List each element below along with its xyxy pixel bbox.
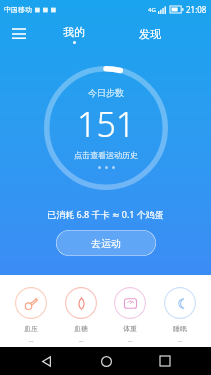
- staticText: --: [128, 336, 133, 345]
- staticText: 点击查看运动历史: [74, 150, 138, 160]
- staticText: 已消耗 6.8 千卡 ≈ 0.1 个鸡蛋: [47, 208, 164, 220]
- button[interactable]: 体重: [112, 285, 148, 347]
- staticText: 4G: [148, 6, 156, 14]
- button[interactable]: 血糖: [63, 285, 99, 347]
- staticText: 中国移动: [4, 5, 32, 14]
- button[interactable]: Recent apps: [152, 348, 178, 374]
- button[interactable]: 去运动: [56, 230, 156, 256]
- button[interactable]: Home: [93, 348, 119, 374]
- staticText: 我的: [63, 25, 85, 39]
- staticText: 血压: [24, 324, 38, 333]
- staticText: 发现: [139, 27, 161, 41]
- button[interactable]: 今日步数 151，点击查看运动历史: [42, 64, 170, 192]
- staticText: --: [29, 336, 34, 345]
- staticText: 体重: [123, 324, 137, 333]
- button[interactable]: 我的: [55, 23, 93, 46]
- button[interactable]: 发现: [131, 23, 169, 45]
- staticText: 去运动: [91, 237, 121, 250]
- button[interactable]: Menu: [8, 23, 30, 45]
- staticText: 血糖: [74, 324, 88, 333]
- button[interactable]: 血压: [13, 285, 49, 347]
- staticText: 21:08: [186, 4, 207, 15]
- staticText: 睡眠: [173, 324, 187, 333]
- staticText: 151: [77, 101, 136, 147]
- button[interactable]: 睡眠: [162, 285, 198, 347]
- staticText: 今日步数: [88, 87, 124, 98]
- button[interactable]: Back: [33, 348, 59, 374]
- staticText: --: [79, 336, 84, 345]
- staticText: --: [178, 336, 183, 345]
